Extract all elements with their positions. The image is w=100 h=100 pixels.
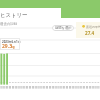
staticText: 直近の平均	[86, 25, 100, 29]
staticText: ヒストリー	[0, 12, 28, 19]
staticText: kg	[11, 45, 15, 49]
staticText: 27.4	[85, 30, 95, 36]
button[interactable]: 期間を選択	[52, 25, 74, 31]
button[interactable]: 直近の平均	[76, 22, 100, 38]
staticText: 過去の記録	[0, 22, 18, 26]
button[interactable]: 2023年6月1日	[0, 38, 20, 50]
staticText: 期間を選択	[55, 26, 72, 30]
staticText: 29.3	[2, 43, 12, 50]
staticText: 2023年6月1日	[2, 40, 21, 44]
